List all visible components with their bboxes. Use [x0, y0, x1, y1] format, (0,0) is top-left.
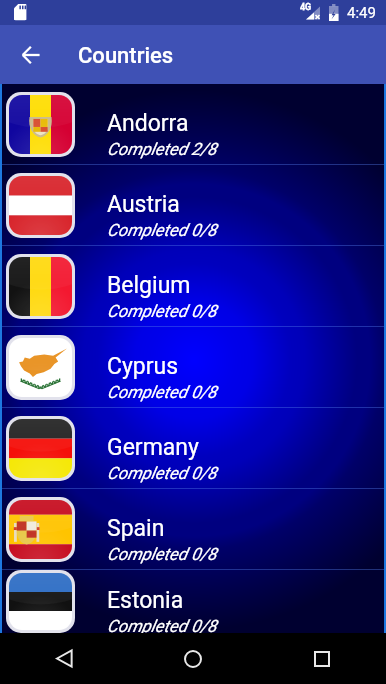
button[interactable]: Navigate up	[0, 25, 62, 84]
button[interactable]: Cyprus	[0, 327, 386, 407]
staticText: Completed 0/8	[107, 301, 217, 321]
staticText: Spain	[107, 515, 165, 542]
staticText: Germany	[107, 434, 199, 461]
button[interactable]: Home	[128, 633, 257, 684]
staticText: Countries	[78, 43, 174, 69]
button[interactable]: Belgium	[0, 246, 386, 326]
button[interactable]: Estonia	[0, 570, 386, 633]
button[interactable]: Germany	[0, 408, 386, 488]
staticText: Completed 0/8	[107, 616, 217, 636]
staticText: Austria	[107, 191, 180, 218]
staticText: Completed 0/8	[107, 382, 217, 402]
staticText: Belgium	[107, 272, 191, 299]
staticText: Completed 2/8	[107, 139, 217, 159]
button[interactable]: Back	[0, 633, 128, 684]
staticText: Estonia	[107, 587, 184, 614]
staticText: 4G	[300, 2, 312, 13]
staticText: Completed 0/8	[107, 220, 217, 240]
staticText: Completed 0/8	[107, 544, 217, 564]
staticText: 4:49	[347, 4, 376, 22]
staticText: Cyprus	[107, 353, 179, 380]
button[interactable]: Austria	[0, 165, 386, 245]
staticText: Completed 0/8	[107, 463, 217, 483]
button[interactable]: Spain	[0, 489, 386, 569]
button[interactable]: Andorra	[0, 84, 386, 164]
staticText: Andorra	[107, 110, 189, 137]
button[interactable]: Recent apps	[257, 633, 386, 684]
